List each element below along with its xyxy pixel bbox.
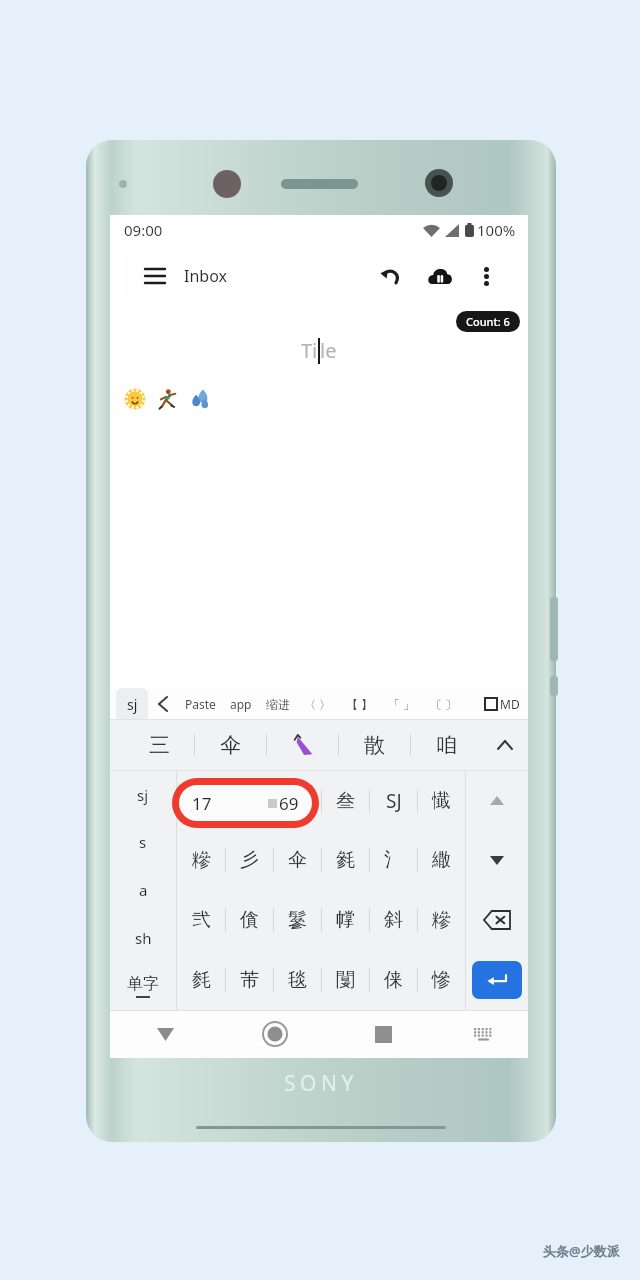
staticText: 叁 <box>336 789 355 813</box>
button[interactable]: sh <box>110 914 176 962</box>
button[interactable]: Page up <box>466 771 528 830</box>
staticText: 芾 <box>240 968 259 992</box>
button[interactable]: 繖 <box>418 830 465 890</box>
button[interactable]: 「 」 <box>388 688 416 720</box>
button[interactable]: 散 <box>339 720 410 770</box>
button[interactable]: 氵 <box>370 830 417 890</box>
staticText: 彡 <box>240 848 259 872</box>
button[interactable]: More options <box>470 260 502 292</box>
button[interactable]: Recents <box>329 1010 438 1058</box>
button[interactable]: 【 】 <box>346 688 374 720</box>
button[interactable]: 芾 <box>226 950 273 1010</box>
button[interactable]: 毿 <box>322 830 369 890</box>
staticText: Ti <box>301 337 318 364</box>
button[interactable]: a <box>110 866 176 914</box>
button[interactable]: s <box>110 818 176 866</box>
staticText: 「 」 <box>388 696 416 712</box>
button[interactable]: 咱 <box>411 720 482 770</box>
staticText: 鬖 <box>288 908 307 932</box>
staticText: 俫 <box>384 968 403 992</box>
button[interactable]: 三 <box>124 720 194 770</box>
button[interactable]: 糝 <box>177 830 225 890</box>
staticText: 幥 <box>336 908 355 932</box>
button[interactable] <box>177 771 225 830</box>
button[interactable]: Backspace <box>466 890 528 950</box>
button[interactable]: Hide keyboard <box>110 1010 220 1058</box>
staticText: Paste <box>185 696 216 712</box>
staticText: sj <box>137 785 149 805</box>
button[interactable]: SJ <box>370 771 417 830</box>
button[interactable]: Switch keyboard <box>438 1010 528 1058</box>
staticText: SONY <box>284 1069 358 1098</box>
button[interactable]: 糝 <box>418 890 465 950</box>
staticText: 缩进 <box>266 697 290 712</box>
button[interactable]: 毯 <box>274 950 321 1010</box>
button[interactable]: Undo <box>372 258 408 294</box>
button[interactable]: 叁 <box>322 771 369 830</box>
button[interactable]: app <box>230 688 252 720</box>
button[interactable]: Home <box>220 1010 329 1058</box>
staticText: 糝 <box>192 848 211 872</box>
button[interactable]: 〔 〕 <box>430 688 458 720</box>
button[interactable]: Paste <box>185 688 216 720</box>
button[interactable]: Upload <box>422 258 458 294</box>
button[interactable]: Collapse <box>482 720 528 770</box>
staticText: Inbox <box>184 265 227 287</box>
button[interactable]: 伞 <box>195 720 266 770</box>
button[interactable]: 闅 <box>322 950 369 1010</box>
staticText: 繖 <box>432 848 451 872</box>
staticText: 氵 <box>384 848 403 872</box>
button[interactable]: MD <box>485 688 520 720</box>
staticText: SJ <box>386 788 402 814</box>
staticText: 100% <box>477 220 516 240</box>
staticText: 斜 <box>384 908 403 932</box>
staticText: 〔 〕 <box>430 696 458 712</box>
staticText: 僋 <box>240 908 259 932</box>
button[interactable] <box>226 771 273 830</box>
staticText: 头条@少数派 <box>543 1242 620 1260</box>
staticText: 【 】 <box>346 696 374 712</box>
button[interactable]: 缩进 <box>266 688 290 720</box>
staticText: 慘 <box>432 968 451 992</box>
button[interactable]: 弐 <box>177 890 225 950</box>
staticText: 单字 <box>127 974 159 994</box>
button[interactable]: 俫 <box>370 950 417 1010</box>
staticText: 毿 <box>336 848 355 872</box>
button[interactable]: 〈 〉 <box>304 688 332 720</box>
button[interactable]: 单字 <box>110 962 176 1010</box>
button[interactable]: 伞 <box>274 830 321 890</box>
button[interactable]: Enter <box>472 961 522 999</box>
staticText: 懴 <box>432 789 451 813</box>
button[interactable]: 慘 <box>418 950 465 1010</box>
button[interactable]: Page down <box>466 830 528 890</box>
button[interactable] <box>274 771 321 830</box>
staticText: 弐 <box>192 908 211 932</box>
button[interactable]: Back <box>148 688 178 720</box>
staticText: MD <box>500 696 520 712</box>
staticText: 〈 〉 <box>304 696 332 712</box>
staticText: sj <box>127 695 138 714</box>
button[interactable]: Menu <box>138 259 172 293</box>
button[interactable]: sj <box>110 771 176 818</box>
staticText: s <box>139 832 147 852</box>
staticText: 69 <box>279 792 299 815</box>
button[interactable]: 毵 <box>177 950 225 1010</box>
staticText: a <box>139 880 148 900</box>
staticText: 毵 <box>192 968 211 992</box>
button[interactable]: 幥 <box>322 890 369 950</box>
staticText: 闅 <box>336 968 355 992</box>
staticText: 17 <box>192 792 212 815</box>
button[interactable]: 僋 <box>226 890 273 950</box>
button[interactable]: 彡 <box>226 830 273 890</box>
staticText: app <box>230 696 252 712</box>
button[interactable]: 斜 <box>370 890 417 950</box>
staticText: 散 <box>364 732 385 758</box>
button[interactable]: sj <box>116 688 148 720</box>
button[interactable]: 鬖 <box>274 890 321 950</box>
button[interactable]: 懴 <box>418 771 465 830</box>
staticText: 糝 <box>432 908 451 932</box>
staticText: sh <box>135 928 152 948</box>
staticText: 毯 <box>288 968 307 992</box>
button[interactable]: Count: 6 <box>466 314 510 329</box>
staticText: 伞 <box>288 848 307 872</box>
